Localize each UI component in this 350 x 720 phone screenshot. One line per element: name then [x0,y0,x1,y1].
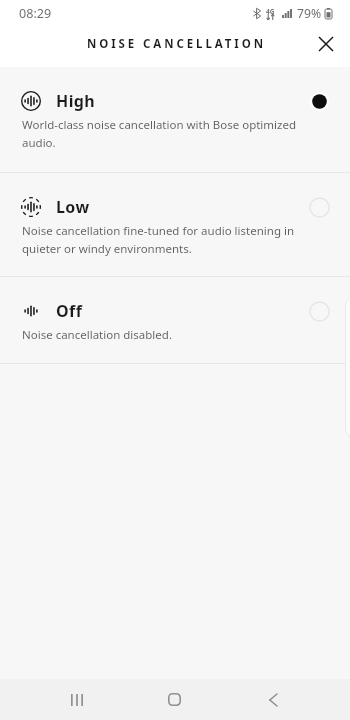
staticText: Low [56,196,90,218]
staticText: 4G [266,7,275,16]
button[interactable]: Low [0,173,350,276]
staticText: 08:29 [19,5,52,22]
staticText: 79% [297,5,322,22]
staticText: Off [56,300,83,322]
button[interactable]: Off [0,277,350,363]
staticText: NOISE CANCELLATION [87,36,266,52]
button[interactable]: High [0,67,350,172]
button[interactable]: Close [311,29,341,59]
button[interactable]: Recent apps [56,679,97,720]
staticText: Noise cancellation disabled. [22,327,303,343]
button[interactable]: Back [252,679,293,720]
staticText: High [56,90,96,112]
staticText: Noise cancellation fine-tuned for audio … [22,223,303,256]
button[interactable]: Home [154,679,195,720]
staticText: World-class noise cancellation with Bose… [22,117,303,150]
